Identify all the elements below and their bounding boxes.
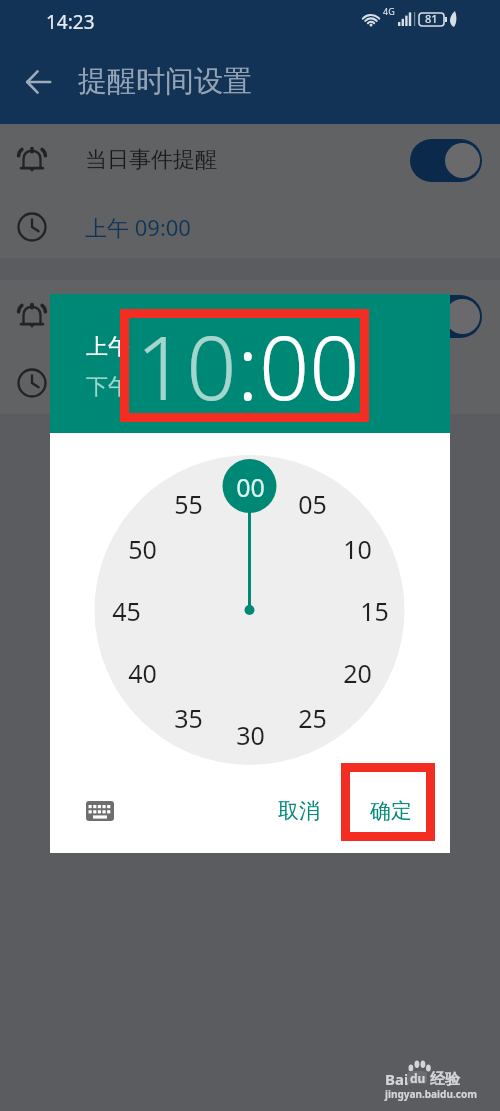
staticText: Bai <box>385 1069 409 1089</box>
button[interactable]: Keyboard input <box>80 791 120 831</box>
staticText: 经验 <box>430 1070 460 1089</box>
staticText: 15 <box>360 594 389 626</box>
button[interactable]: 上午 09:00 <box>0 191 500 263</box>
staticText: jingyan.baidu.com <box>385 1087 477 1101</box>
button[interactable]: 当日事件提醒 <box>0 124 500 196</box>
button[interactable] <box>0 347 500 419</box>
button[interactable]: 00 <box>259 306 360 414</box>
button[interactable]: 下午 <box>86 373 130 401</box>
button[interactable]: 55 <box>164 487 212 519</box>
staticText: 上午 <box>86 333 130 361</box>
button[interactable]: 05 <box>288 487 336 519</box>
staticText: : <box>237 306 259 414</box>
button[interactable]: 25 <box>288 701 336 733</box>
button[interactable]: 确定 <box>354 788 428 834</box>
staticText: 05 <box>298 487 327 519</box>
button[interactable]: 00 <box>226 470 274 502</box>
staticText: 00 <box>236 470 265 502</box>
button[interactable]: 15 <box>350 594 398 626</box>
button[interactable]: 10 <box>333 532 381 564</box>
staticText: 确定 <box>370 798 412 824</box>
button[interactable]: Back <box>19 62 59 102</box>
button[interactable]: 30 <box>226 718 274 750</box>
button[interactable]: Toggle reminder <box>410 295 482 338</box>
staticText: 40 <box>128 656 157 688</box>
button[interactable]: 45 <box>102 594 150 626</box>
staticText: du <box>410 1071 426 1083</box>
staticText: 45 <box>112 594 141 626</box>
staticText: 35 <box>174 701 203 733</box>
staticText: 提醒时间设置 <box>78 63 252 100</box>
button[interactable]: 35 <box>164 701 212 733</box>
staticText: 25 <box>298 701 327 733</box>
button[interactable]: 50 <box>118 532 166 564</box>
button[interactable]: 10 <box>136 306 237 414</box>
staticText: 下午 <box>86 373 130 401</box>
staticText: 20 <box>343 656 372 688</box>
button[interactable]: 取消 <box>262 788 336 834</box>
staticText: 4G <box>383 5 395 17</box>
button[interactable]: Toggle reminder <box>410 139 482 182</box>
staticText: 10 <box>343 532 372 564</box>
button[interactable]: 20 <box>333 656 381 688</box>
staticText: 14:23 <box>46 9 95 35</box>
button[interactable]: 上午 <box>86 333 130 361</box>
staticText: 30 <box>236 718 265 750</box>
staticText: 55 <box>174 487 203 519</box>
staticText: 当日事件提醒 <box>85 146 217 174</box>
button[interactable]: Toggle reminder <box>0 280 500 352</box>
staticText: 81 <box>425 11 438 26</box>
staticText: 取消 <box>278 798 320 824</box>
staticText: 上午 09:00 <box>85 212 191 242</box>
button[interactable]: 40 <box>118 656 166 688</box>
staticText: 50 <box>128 532 157 564</box>
